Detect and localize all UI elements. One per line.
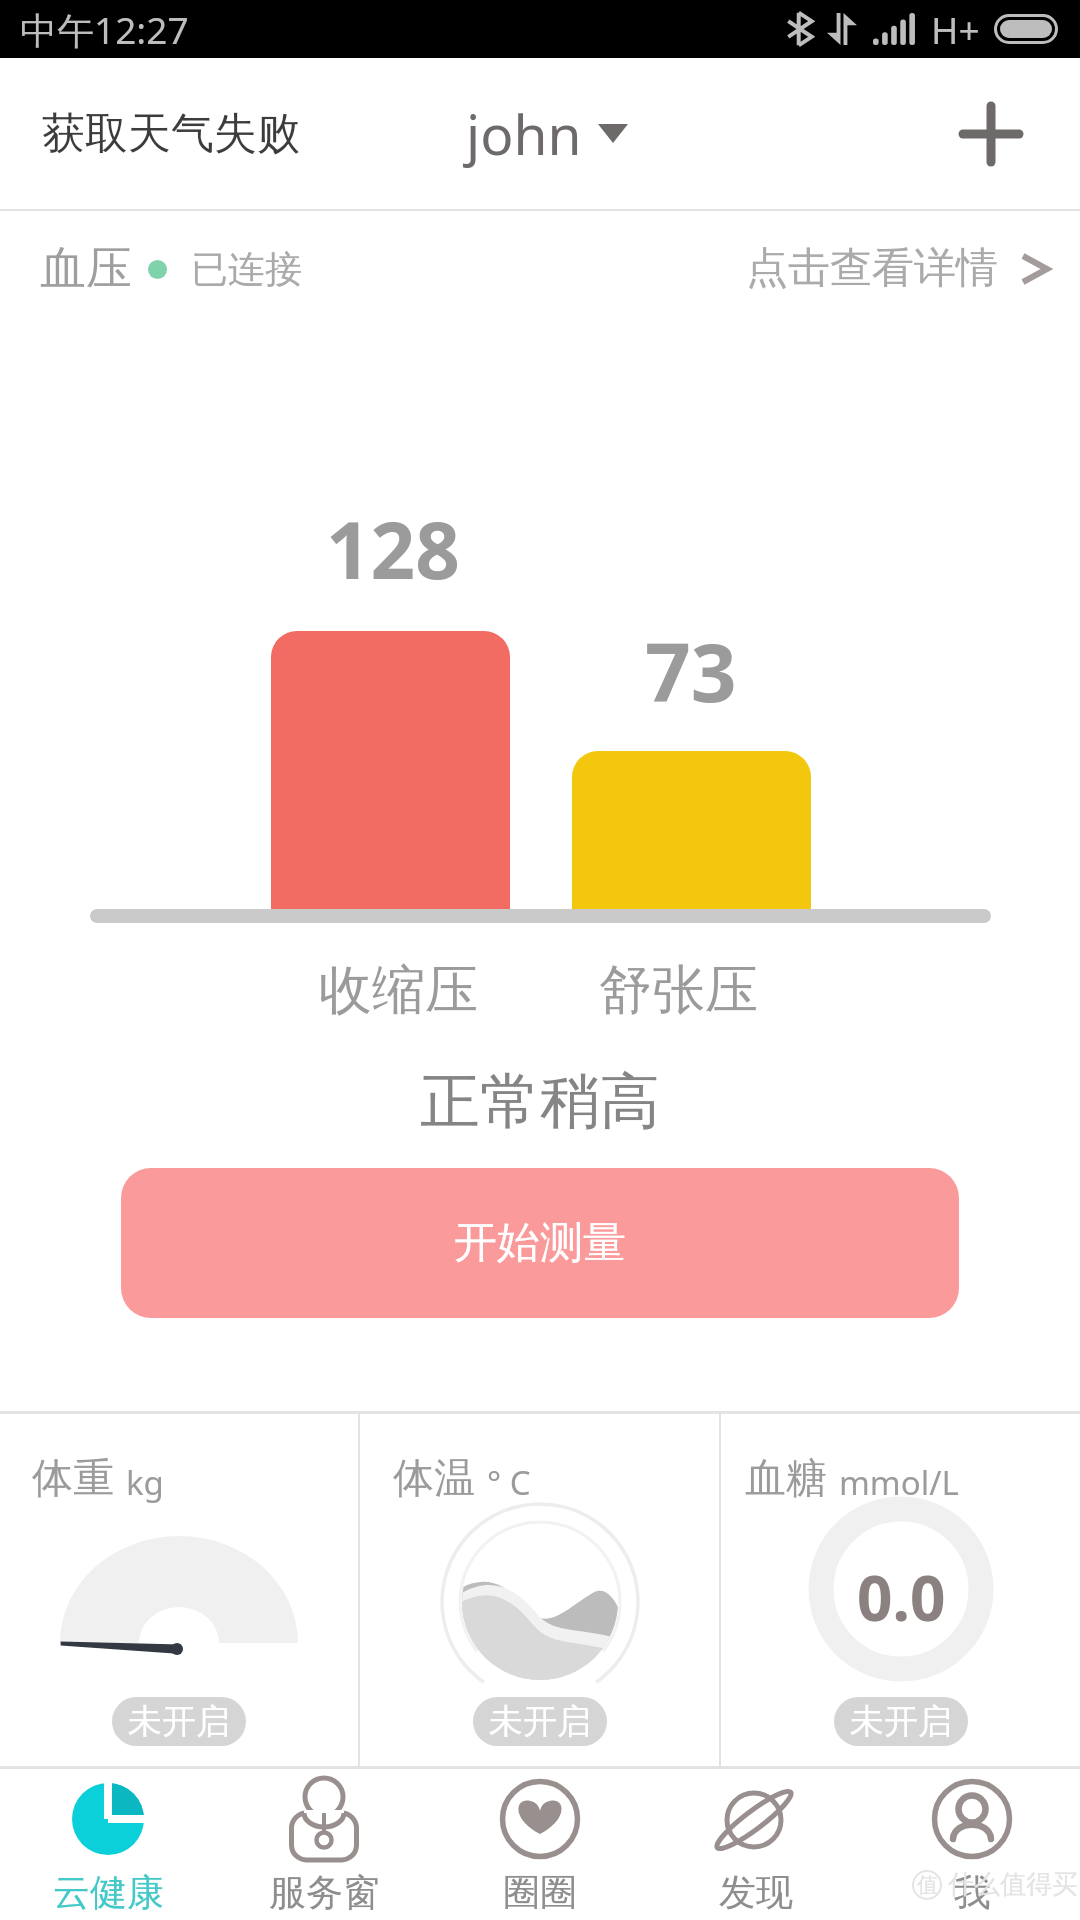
button[interactable]: 体温 bbox=[360, 1414, 719, 1766]
button[interactable]: 发现 bbox=[648, 1769, 864, 1920]
staticText: 已连接 bbox=[191, 246, 302, 293]
staticText: 服务窗 bbox=[269, 1869, 380, 1916]
button[interactable]: 体重 bbox=[0, 1414, 358, 1766]
staticText: 0.0 bbox=[857, 1555, 946, 1639]
staticText: kg bbox=[126, 1460, 164, 1505]
staticText: 云健康 bbox=[53, 1869, 164, 1916]
staticText: H+ bbox=[931, 4, 980, 54]
staticText: 发现 bbox=[719, 1869, 793, 1916]
staticText: 正常稍高 bbox=[420, 1064, 660, 1140]
button[interactable]: 血压 bbox=[0, 211, 1080, 326]
staticText: 舒张压 bbox=[599, 957, 758, 1024]
button[interactable]: 云健康 bbox=[0, 1769, 216, 1920]
staticText: 73 bbox=[645, 616, 737, 725]
staticText: 开始测量 bbox=[454, 1216, 626, 1270]
button[interactable]: 我 bbox=[864, 1769, 1080, 1920]
staticText: 未开启 bbox=[489, 1700, 591, 1743]
staticText: 未开启 bbox=[128, 1700, 230, 1743]
staticText: 体温 bbox=[393, 1453, 475, 1505]
staticText: 我 bbox=[954, 1869, 991, 1916]
staticText: 什么值得买 bbox=[948, 1868, 1078, 1901]
staticText: 中午12:27 bbox=[20, 4, 189, 55]
button[interactable]: Add bbox=[948, 91, 1034, 177]
button[interactable]: 开始测量 bbox=[121, 1168, 959, 1318]
staticText: 血糖 bbox=[745, 1453, 827, 1505]
staticText: mmol/L bbox=[839, 1460, 959, 1505]
staticText: 点击查看详情 bbox=[746, 242, 998, 295]
staticText: 圈圈 bbox=[503, 1869, 577, 1916]
staticText: john bbox=[466, 96, 582, 171]
staticText: 未开启 bbox=[850, 1700, 952, 1743]
staticText: 收缩压 bbox=[319, 957, 478, 1024]
staticText: 值 bbox=[917, 1872, 938, 1898]
button[interactable]: 血糖 bbox=[721, 1414, 1080, 1766]
button[interactable]: 圈圈 bbox=[432, 1769, 648, 1920]
button[interactable]: 未开启 bbox=[834, 1697, 968, 1746]
staticText: ° C bbox=[487, 1460, 531, 1505]
button[interactable]: 服务窗 bbox=[216, 1769, 432, 1920]
button[interactable]: john bbox=[466, 96, 628, 171]
button[interactable]: 未开启 bbox=[473, 1697, 607, 1746]
staticText: 128 bbox=[326, 496, 460, 602]
button[interactable]: 未开启 bbox=[112, 1697, 246, 1746]
staticText: 血压 bbox=[40, 240, 132, 298]
staticText: 体重 bbox=[32, 1453, 114, 1505]
button[interactable]: 获取天气失败 bbox=[42, 107, 300, 161]
